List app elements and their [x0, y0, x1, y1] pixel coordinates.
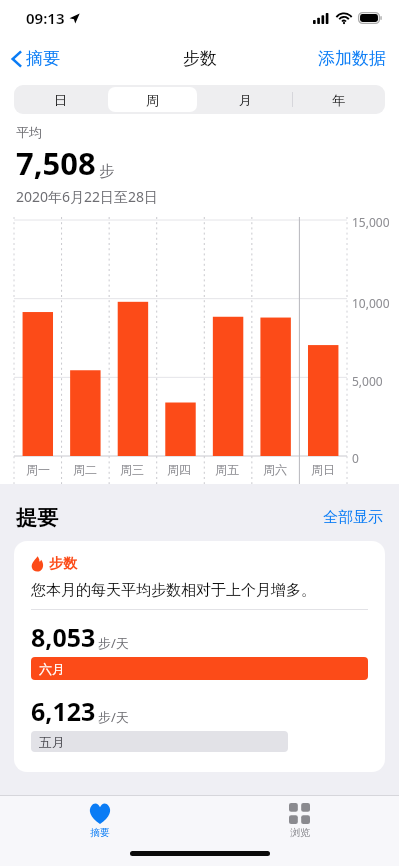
staticText: 周: [146, 92, 159, 108]
staticText: 2020年6月22日至28日: [16, 187, 159, 206]
staticText: 周三: [120, 462, 144, 477]
staticText: 09:13: [26, 8, 65, 28]
staticText: 步: [99, 162, 114, 181]
staticText: 8,053: [31, 620, 96, 654]
staticText: 6,123: [31, 694, 96, 728]
button[interactable]: 步数: [14, 541, 385, 772]
staticText: 0: [352, 450, 359, 466]
button[interactable]: 摘要: [0, 42, 72, 75]
button[interactable]: 日: [16, 87, 104, 112]
staticText: 浏览: [290, 826, 310, 839]
staticText: 周一: [26, 462, 50, 477]
staticText: 月: [239, 92, 252, 108]
staticText: 周四: [167, 462, 191, 477]
staticText: 摘要: [90, 826, 110, 839]
staticText: 六月: [39, 661, 65, 677]
button[interactable]: 全部显示: [323, 504, 383, 531]
staticText: 步/天: [98, 634, 129, 652]
staticText: 步/天: [98, 708, 129, 726]
staticText: 周五: [215, 462, 239, 477]
button[interactable]: 年: [294, 87, 383, 112]
staticText: 15,000: [352, 214, 390, 230]
button[interactable]: 添加数据: [305, 39, 399, 78]
button[interactable]: 浏览: [199, 796, 399, 845]
staticText: 提要: [16, 505, 58, 531]
staticText: 步数: [49, 555, 77, 573]
staticText: 摘要: [26, 48, 60, 69]
staticText: 年: [332, 92, 345, 108]
staticText: 步数: [183, 48, 217, 69]
staticText: 5,000: [352, 373, 383, 389]
staticText: 平均: [16, 124, 42, 140]
staticText: 您本月的每天平均步数相对于上个月增多。: [31, 581, 316, 600]
staticText: 五月: [39, 734, 65, 750]
staticText: 周二: [73, 462, 97, 477]
button[interactable]: 周: [108, 87, 197, 112]
staticText: 周日: [311, 462, 335, 477]
staticText: 10,000: [352, 295, 390, 311]
button[interactable]: 摘要: [0, 796, 199, 845]
staticText: 周六: [263, 462, 287, 477]
button[interactable]: 月: [201, 87, 290, 112]
staticText: 7,508: [16, 142, 96, 184]
staticText: 日: [54, 92, 67, 108]
